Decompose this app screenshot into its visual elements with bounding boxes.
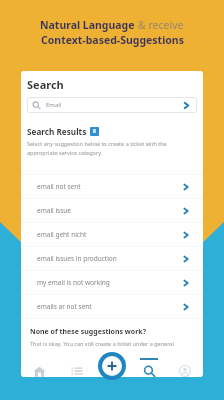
button[interactable]: my email is not working <box>21 271 203 294</box>
staticText: emails ar not sent <box>37 302 92 311</box>
staticText: That is okay. You can still create a tic… <box>30 340 174 347</box>
staticText: Search Results <box>27 126 87 137</box>
button[interactable]: Tickets <box>58 349 95 377</box>
button[interactable]: email issues in production <box>21 247 203 270</box>
staticText: email issue <box>37 206 72 215</box>
staticText: Context-based-Suggestions <box>41 33 184 47</box>
button[interactable]: Search <box>131 349 167 377</box>
staticText: email not sent <box>37 182 81 191</box>
staticText: email geht nicht <box>37 230 87 239</box>
staticText: Email <box>46 101 62 109</box>
button[interactable]: Home <box>21 349 58 377</box>
staticText: Natural Language <box>40 18 138 32</box>
button[interactable]: emails ar not sent <box>21 295 203 318</box>
button[interactable]: Profile <box>167 349 203 377</box>
button[interactable]: email geht nicht <box>21 223 203 246</box>
button[interactable]: email issue <box>21 199 203 222</box>
button[interactable]: Create ticket <box>98 352 126 380</box>
staticText: Select any suggestion below to create a … <box>27 140 167 157</box>
staticText: my email is not working <box>37 278 110 287</box>
staticText: & receive <box>138 18 184 32</box>
staticText: None of these suggestions work? <box>30 327 146 337</box>
staticText: email issues in production <box>37 254 117 263</box>
button[interactable]: Email <box>27 97 197 113</box>
staticText: Search <box>27 77 64 92</box>
button[interactable]: email not sent <box>21 175 203 198</box>
staticText: 6 <box>93 128 96 135</box>
